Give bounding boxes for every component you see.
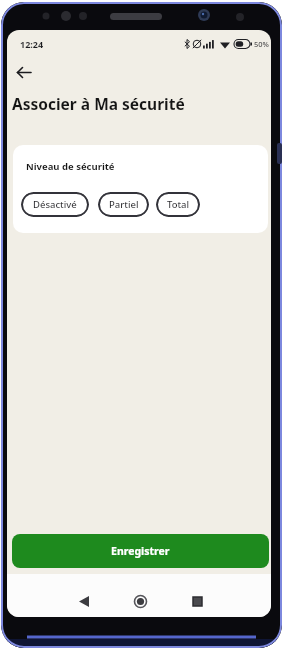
button[interactable] (183, 587, 211, 615)
staticText: Niveau de sécurité (26, 160, 115, 173)
button[interactable]: Total (156, 192, 200, 217)
staticText: 12:24 (20, 38, 44, 50)
staticText: Enregistrer (111, 544, 170, 558)
button[interactable]: Désactivé (21, 192, 89, 217)
staticText: Associer à Ma sécurité (12, 93, 185, 114)
staticText: Partiel (109, 198, 139, 211)
button[interactable]: Partiel (98, 192, 149, 217)
staticText: 50% (254, 39, 269, 49)
staticText: Désactivé (33, 198, 77, 211)
button[interactable] (70, 587, 98, 615)
button[interactable] (9, 59, 39, 85)
button[interactable] (126, 587, 154, 615)
staticText: Total (167, 198, 190, 211)
button[interactable]: Enregistrer (12, 534, 269, 568)
